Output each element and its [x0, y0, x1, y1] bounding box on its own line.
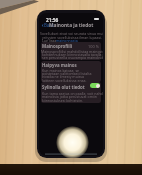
- staticText: Lue lisaa: [42, 38, 58, 43]
- staticText: Back: [44, 22, 54, 28]
- staticText: poistetaan valittomasti listalta: [42, 71, 92, 76]
- staticText: Mainosprofiilisi mahdollistaa mainosten: [41, 49, 103, 54]
- staticText: sen perusteella osuvampia mainoksia.: [42, 55, 103, 60]
- staticText: Kun mainos katoaa, se: [42, 68, 80, 73]
- staticText: Mainosprofiili: [42, 43, 73, 49]
- staticText: Mainonta ja tiedot: [49, 22, 94, 29]
- staticText: Haipyva mainos: [42, 62, 77, 68]
- staticText: 21:56: [46, 17, 59, 24]
- staticText: Kun tama asetus on paalla, voit nahda: [42, 91, 103, 96]
- staticText: laitteen sovelluksissa enaa.: [42, 78, 87, 83]
- button[interactable]: [41, 42, 101, 60]
- staticText: eivatka ne ilmesty muissa: [42, 74, 85, 79]
- staticText: Sovellukset eivat voi seurata sinua muis…: [40, 31, 103, 36]
- staticText: Sylinolla olut tiedot: [42, 84, 85, 90]
- staticText: yritysten sovelluksissa ilman lupaasi.: [42, 35, 103, 40]
- button[interactable]: Back: [41, 22, 54, 28]
- staticText: 100 %: [88, 44, 99, 49]
- staticText: kohdennuksen kiinnostavalla tavalla ja: [42, 52, 103, 57]
- button[interactable]: [41, 61, 101, 82]
- staticText: mainonnasta: [56, 38, 78, 43]
- button[interactable]: Toggle notifications: [90, 83, 100, 88]
- staticText: kiinnostuksesi kohteisiin.: [42, 98, 84, 103]
- button[interactable]: [41, 82, 101, 103]
- staticText: mainoksia jotka perustuvat omiin: [42, 94, 97, 99]
